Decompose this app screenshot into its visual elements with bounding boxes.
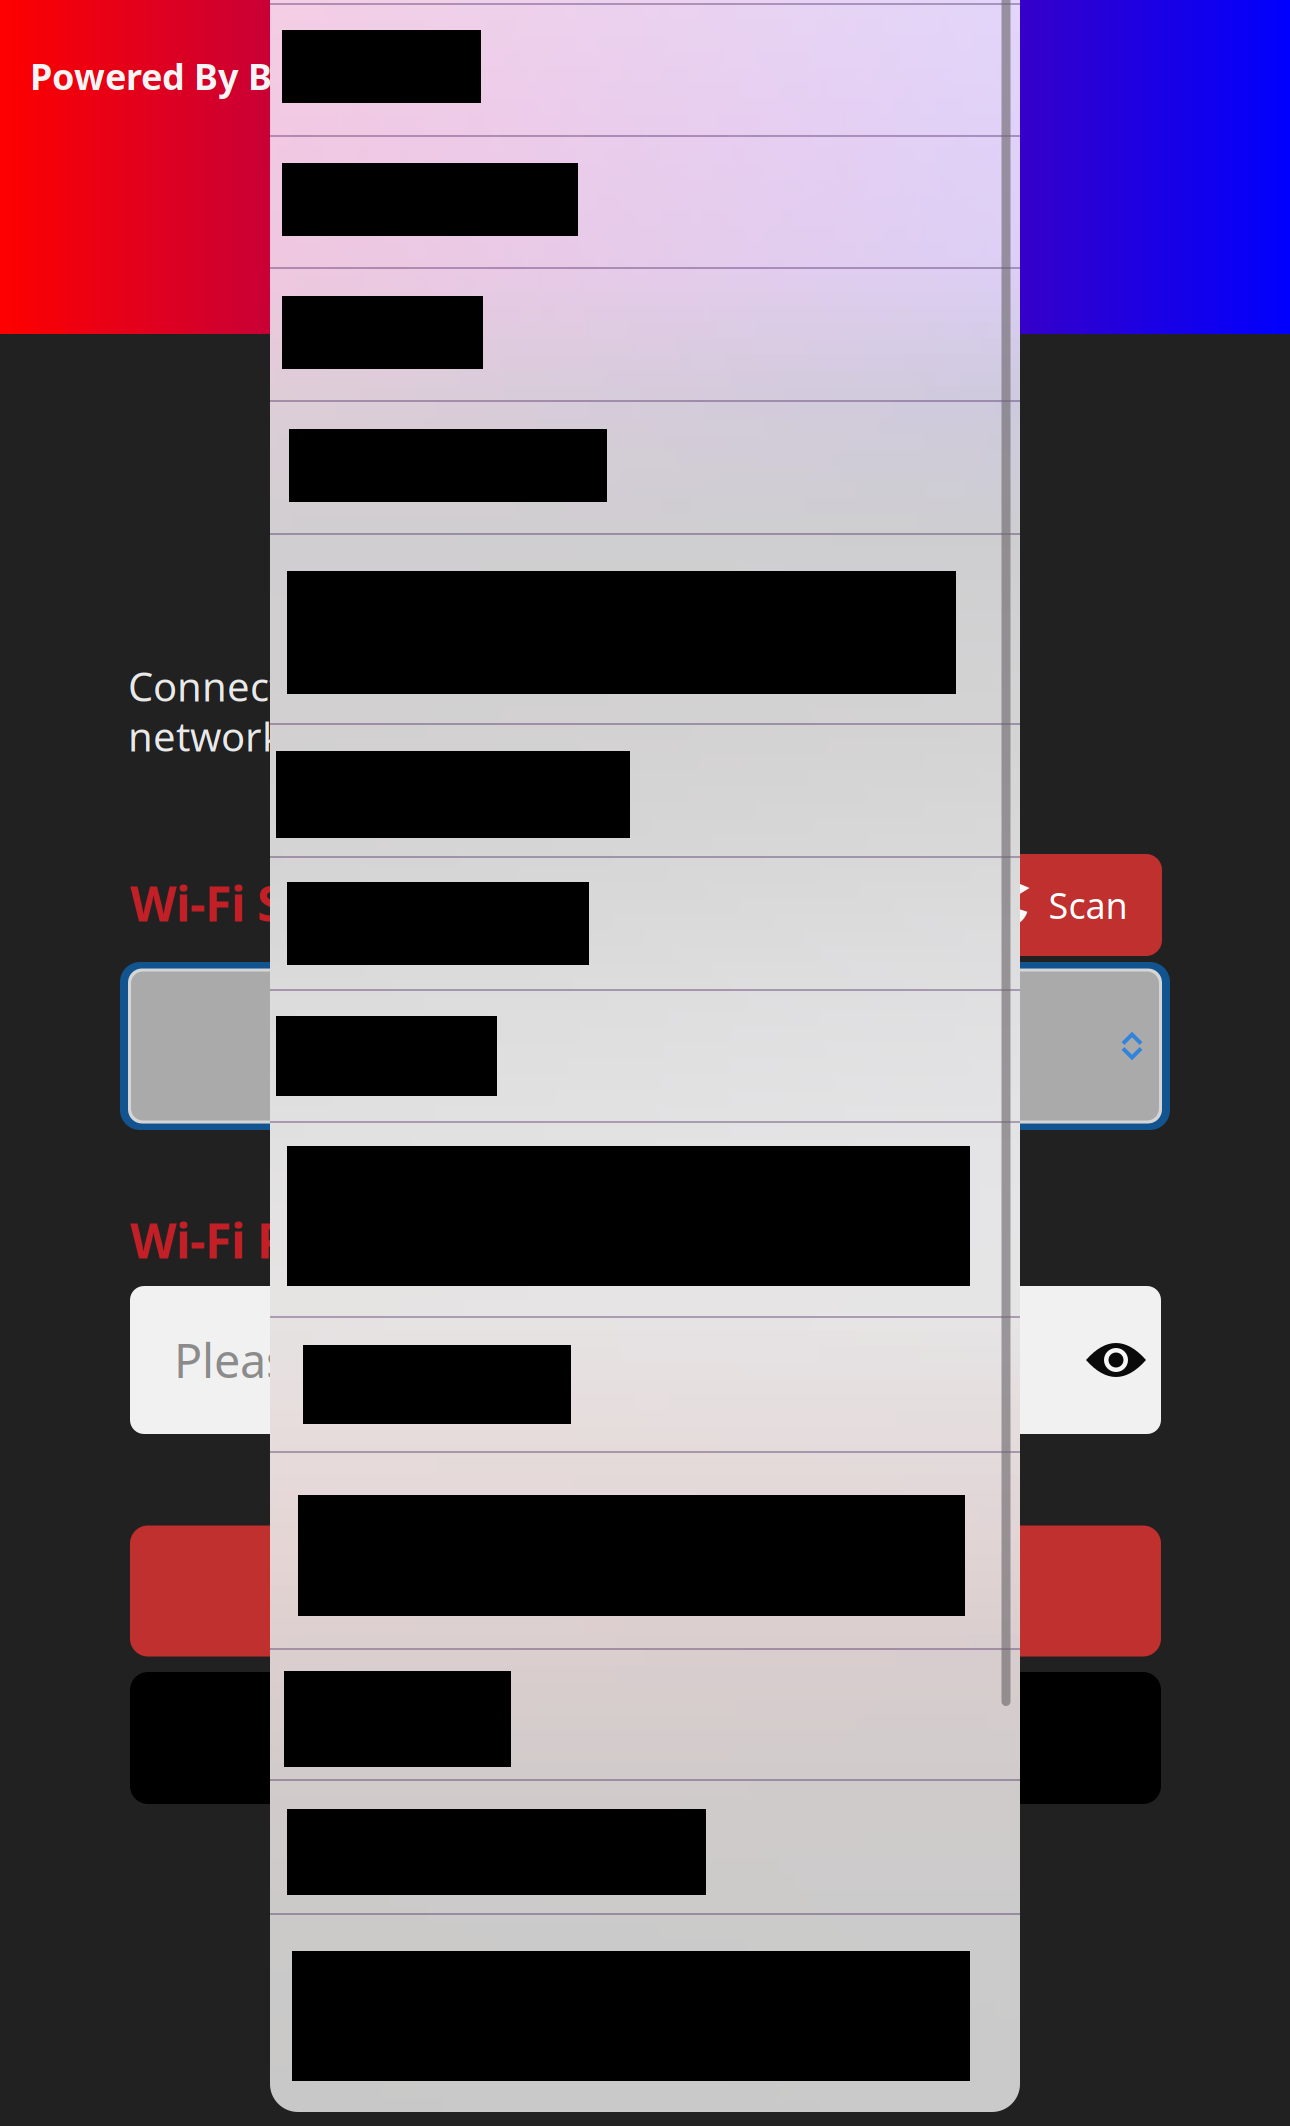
staticText: Wi-Fi SSID bbox=[130, 871, 363, 935]
staticText: network to start using it. bbox=[128, 709, 586, 762]
staticText: Wi-Fi Password bbox=[130, 1208, 485, 1272]
staticText: Powered By Brand bbox=[30, 52, 355, 100]
staticText: Connect your device to a Wi-Fi bbox=[128, 659, 689, 712]
button[interactable]: Connect bbox=[130, 1525, 1161, 1656]
button[interactable]: Cancel bbox=[130, 1672, 1161, 1804]
button[interactable] bbox=[120, 962, 1170, 1130]
button[interactable]: Show password bbox=[1066, 1322, 1166, 1398]
staticText: Please enter the Wi-Fi password bbox=[174, 1329, 868, 1391]
button[interactable]: Scan bbox=[950, 854, 1162, 956]
staticText: Connect bbox=[568, 1564, 723, 1617]
staticText: Scan bbox=[1048, 881, 1127, 929]
